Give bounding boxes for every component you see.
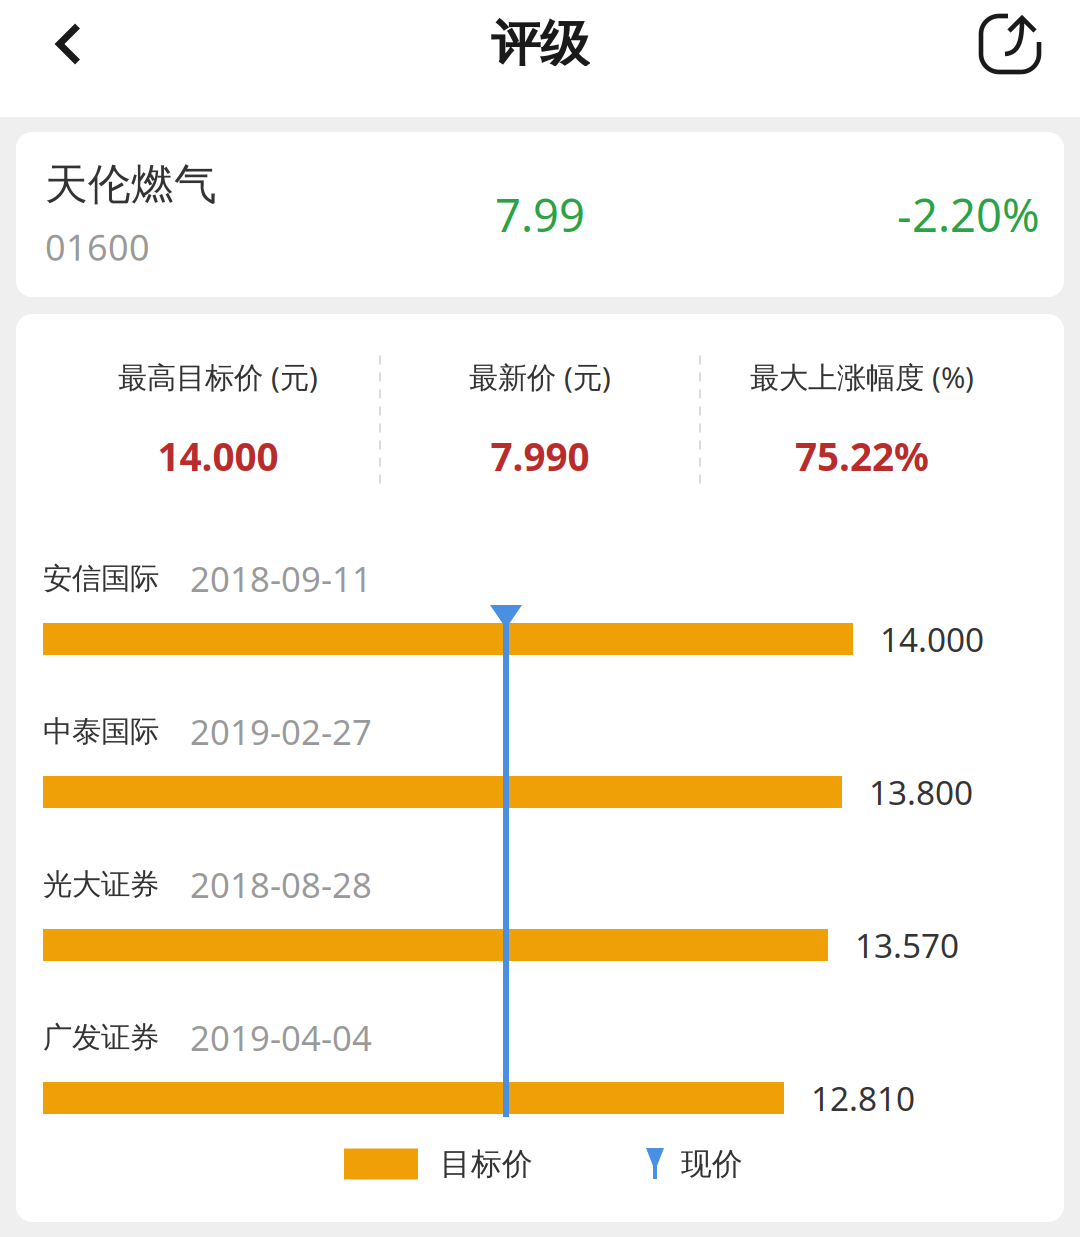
staticText: 2018-08-28 (190, 861, 372, 907)
staticText: 现价 (681, 1145, 743, 1183)
button[interactable]: Share (940, 0, 1080, 88)
button[interactable]: Back (0, 0, 137, 88)
staticText: 2018-09-11 (190, 555, 372, 601)
staticText: 7.990 (490, 430, 589, 482)
staticText: 14.000 (157, 430, 278, 482)
staticText: 评级 (491, 14, 589, 74)
button[interactable]: 光大证券 (43, 854, 1064, 961)
staticText: 中泰国际 (43, 713, 159, 749)
staticText: 14.000 (880, 617, 984, 661)
staticText: 天伦燃气 (45, 158, 217, 211)
staticText: 13.570 (855, 923, 959, 967)
button[interactable]: 安信国际 (43, 548, 1064, 655)
staticText: 7.99 (495, 184, 585, 245)
staticText: 75.22% (795, 430, 929, 482)
staticText: 01600 (45, 223, 150, 271)
staticText: 13.800 (869, 770, 973, 814)
staticText: -2.20% (897, 184, 1040, 245)
staticText: 最新价 (元) (469, 357, 611, 396)
staticText: 广发证券 (43, 1019, 159, 1055)
button[interactable]: 天伦燃气 (16, 132, 1064, 297)
button[interactable]: 中泰国际 (43, 701, 1064, 808)
button[interactable]: 广发证券 (43, 1007, 1064, 1114)
staticText: 光大证券 (43, 866, 159, 902)
staticText: 最大上涨幅度 (%) (750, 357, 974, 396)
staticText: 安信国际 (43, 560, 159, 596)
staticText: 目标价 (440, 1145, 533, 1183)
staticText: 2019-04-04 (190, 1014, 372, 1060)
staticText: 2019-02-27 (190, 708, 372, 754)
staticText: 最高目标价 (元) (118, 357, 318, 396)
staticText: 12.810 (811, 1076, 915, 1120)
